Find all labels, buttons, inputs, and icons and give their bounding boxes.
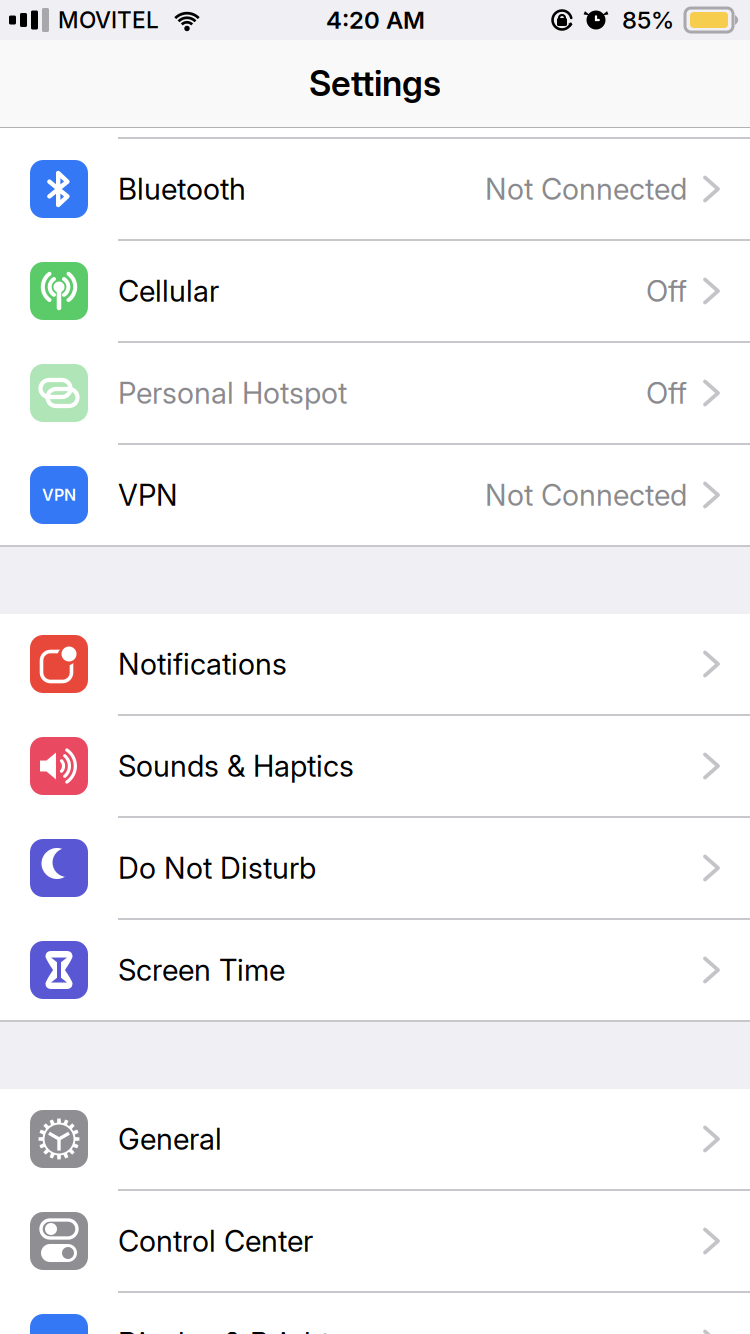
staticText: Display & Brightness xyxy=(118,1325,393,1334)
staticText: Not Connected xyxy=(485,171,687,207)
staticText: 85% xyxy=(622,5,674,34)
button[interactable]: Screen Time xyxy=(0,920,750,1022)
staticText: MOVITEL xyxy=(58,6,159,34)
staticText: VPN xyxy=(42,485,76,505)
staticText: Off xyxy=(646,375,687,411)
staticText: Control Center xyxy=(118,1223,313,1259)
staticText: Screen Time xyxy=(118,952,285,988)
staticText: Do Not Disturb xyxy=(118,850,316,886)
button[interactable]: Do Not Disturb xyxy=(0,818,750,920)
button[interactable]: Sounds & Haptics xyxy=(0,716,750,818)
button[interactable]: Bluetooth xyxy=(0,139,750,241)
staticText: Sounds & Haptics xyxy=(118,748,354,784)
staticText: Personal Hotspot xyxy=(118,375,347,411)
button[interactable]: Personal Hotspot xyxy=(0,343,750,445)
staticText: General xyxy=(118,1121,222,1157)
button[interactable]: A xyxy=(0,1293,750,1334)
staticText: 4:20 AM xyxy=(326,5,425,34)
staticText: Off xyxy=(646,273,687,309)
button[interactable]: General xyxy=(0,1089,750,1191)
button[interactable]: Cellular xyxy=(0,241,750,343)
button[interactable]: Control Center xyxy=(0,1191,750,1293)
staticText: Bluetooth xyxy=(118,171,246,207)
staticText: Cellular xyxy=(118,273,219,309)
staticText: VPN xyxy=(118,477,178,513)
staticText: Settings xyxy=(309,62,441,104)
button[interactable]: Notifications xyxy=(0,614,750,716)
staticText: Not Connected xyxy=(485,477,687,513)
staticText: Notifications xyxy=(118,646,287,682)
button[interactable]: VPN xyxy=(0,445,750,547)
